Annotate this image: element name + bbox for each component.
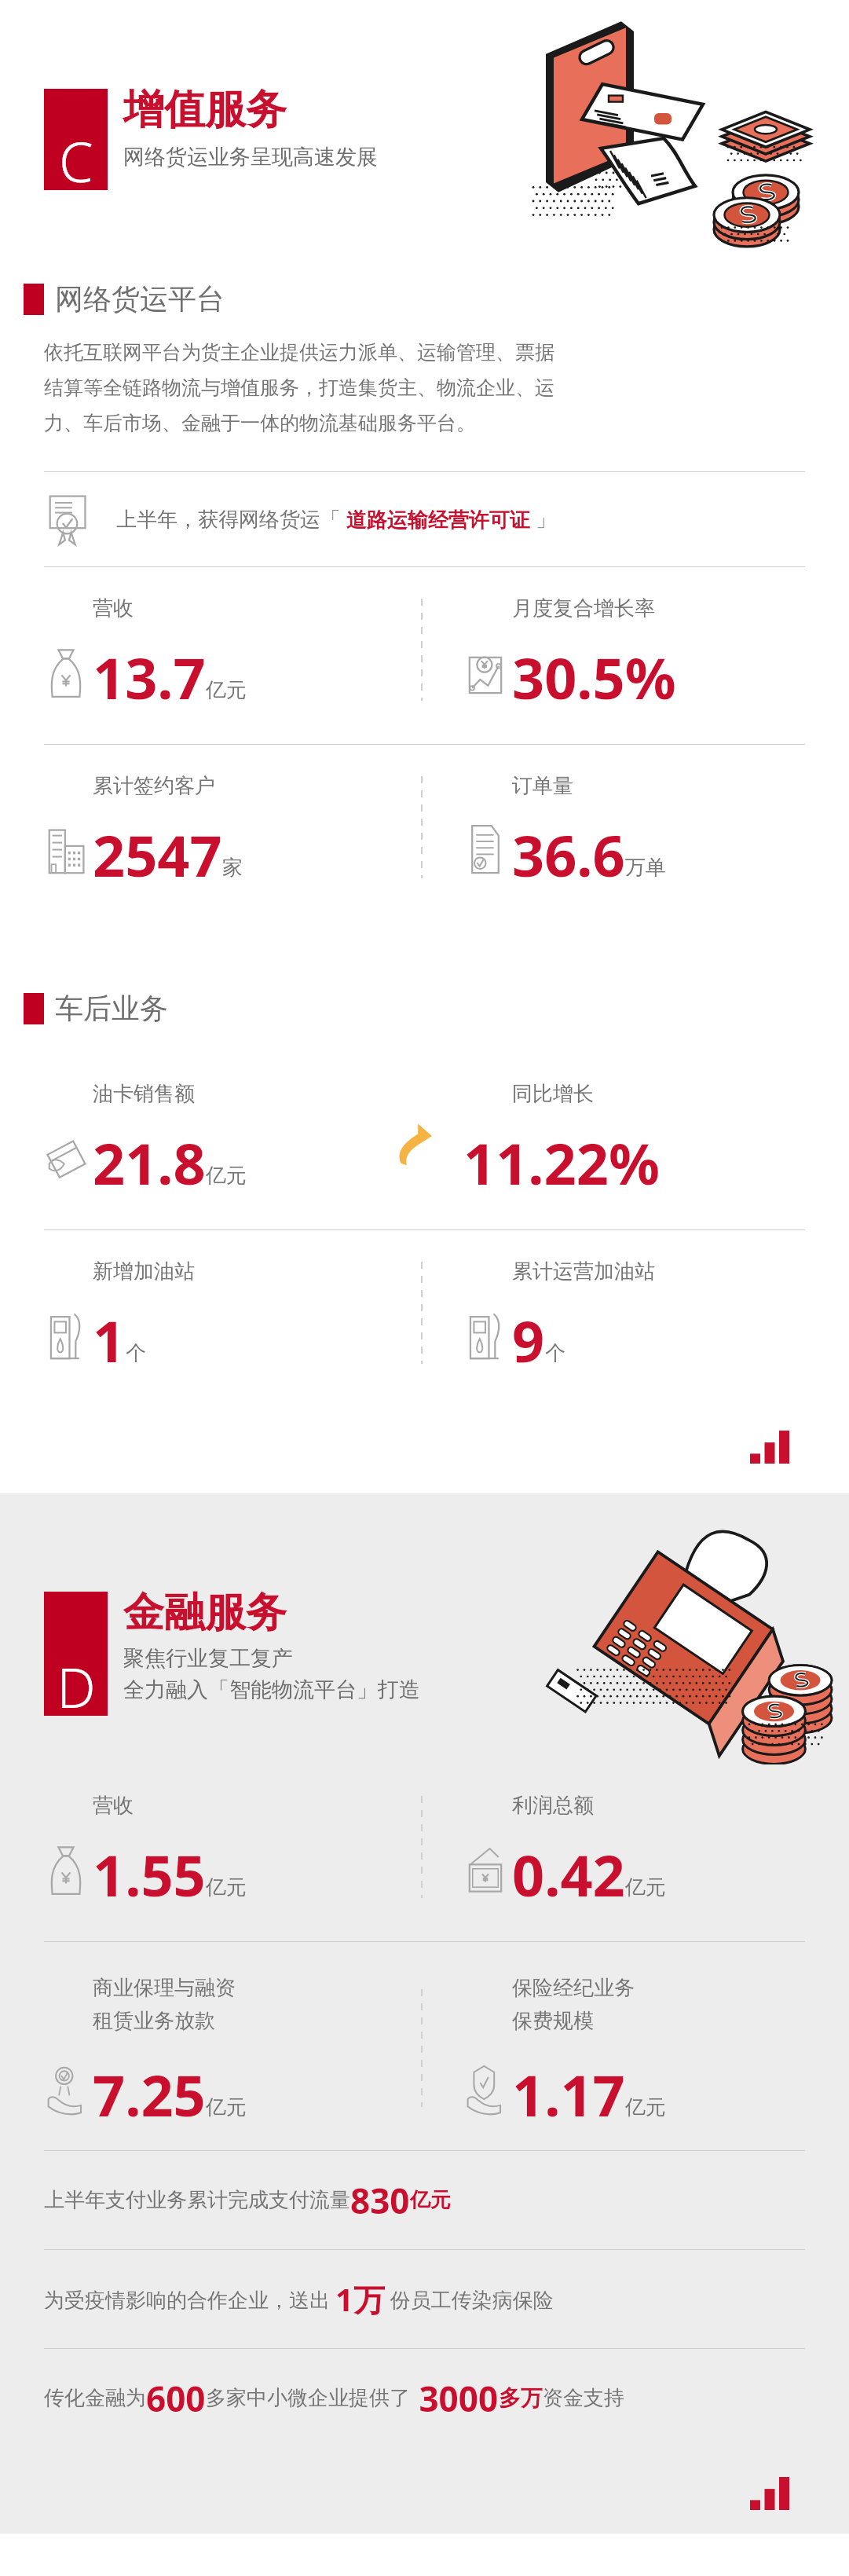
staticText: 11.22% [463,1124,660,1201]
staticText: 道路运输经营许可证 [341,505,536,533]
staticText: 亿元 [206,1874,247,1900]
staticText: 600 [146,2375,206,2422]
staticText: 利润总额 [512,1793,594,1819]
staticText: 1万 [335,2277,385,2321]
staticText: 7.25 [93,2056,206,2133]
button[interactable]: 保险经纪业务 保费规模 [463,1975,833,2122]
staticText: 多家中小微企业提供了 [206,2385,410,2411]
staticText: 累计签约客户 [93,773,215,799]
staticText: 个 [545,1340,565,1366]
other: 订单量 [463,813,512,879]
staticText: 增值服务 [123,84,287,136]
staticText: 网络货运平台 [55,281,225,317]
staticText: 万单 [625,855,666,881]
staticText: 1 [93,1302,126,1379]
button[interactable]: 月度复合增长率 [463,595,833,705]
staticText: C [59,123,93,198]
other: 月度复合增长率 [463,636,512,702]
staticText: 同比增长 [512,1081,594,1107]
button[interactable]: 利润总额 [463,1793,833,1902]
staticText: 个 [126,1340,146,1366]
staticText: 为受疫情影响的合作企业，送出 [44,2285,335,2314]
staticText: 月度复合增长率 [512,595,655,621]
staticText: 1.55 [93,1836,206,1913]
button[interactable]: 累计运营加油站 [463,1259,833,1368]
button[interactable]: 商业保理与融资 租赁业务放款 [44,1975,413,2122]
button[interactable]: 累计签约客户 [44,773,413,882]
staticText: 2547 [93,816,222,893]
staticText: 36.6 [512,816,625,893]
staticText: D [57,1649,96,1724]
staticText: 新增加油站 [93,1259,195,1284]
button[interactable]: 营收 [44,595,413,705]
other: 保险经纪业务 保费规模 [463,2053,512,2119]
other: 累计运营加油站 [463,1299,512,1365]
staticText: 商业保理与融资 租赁业务放款 [93,1975,236,2034]
staticText: 上半年，获得网络货运「 [116,507,341,533]
button[interactable]: 传化金融为 [44,2349,849,2447]
other: 累计签约客户 [44,813,93,879]
staticText: 营收 [93,1793,134,1819]
button[interactable]: 订单量 [463,773,833,882]
other: 营收 [44,636,93,702]
staticText: 聚焦行业复工复产 [123,1645,293,1672]
other: 新增加油站 [44,1299,93,1365]
button[interactable]: 新增加油站 [44,1259,413,1368]
button[interactable]: 油卡销售额 [44,1081,413,1190]
button[interactable]: 车后业务 [24,991,849,1026]
other: 商业保理与融资 租赁业务放款 [44,2053,93,2119]
staticText: 1.17 [512,2056,625,2133]
staticText: 3000 [410,2375,499,2422]
staticText: 亿元 [206,677,247,703]
other: 营收 [44,1833,93,1899]
staticText: 金融服务 [123,1587,287,1639]
staticText: 21.8 [93,1124,206,1201]
staticText: 营收 [93,595,134,621]
staticText: 13.7 [93,639,206,716]
button[interactable]: D [44,1592,108,1716]
staticText: 亿元 [625,1874,666,1900]
staticText: 依托互联网平台为货主企业提供运力派单、运输管理、票据 结算等全链路物流与增值服务… [44,340,554,435]
other: 利润总额 [463,1833,512,1899]
button[interactable]: 网络货运平台 [24,281,849,317]
button[interactable]: 为受疫情影响的合作企业，送出 [44,2250,849,2348]
staticText: 订单量 [512,773,573,799]
other: 油卡销售额 [44,1121,93,1187]
staticText: 亿元 [206,1163,247,1189]
staticText: 多万 [499,2384,543,2412]
staticText: 家 [222,855,243,881]
staticText: 全力融入「智能物流平台」打造 [123,1676,420,1703]
staticText: 上半年支付业务累计完成支付流量 [44,2187,350,2213]
staticText: 份员工传染病保险 [385,2285,554,2314]
button[interactable]: C [44,89,108,190]
staticText: 资金支持 [543,2385,624,2411]
staticText: 830 [350,2177,410,2224]
staticText: 9 [512,1302,545,1379]
staticText: 保险经纪业务 保费规模 [512,1975,635,2034]
staticText: 」 [536,507,556,533]
staticText: 亿元 [410,2187,451,2213]
staticText: 传化金融为 [44,2385,146,2411]
staticText: 油卡销售额 [93,1081,195,1107]
staticText: 亿元 [206,2094,247,2120]
button[interactable]: 同比增长 [463,1081,833,1190]
staticText: 车后业务 [55,991,168,1026]
staticText: 30.5% [512,639,676,716]
button[interactable]: 营收 [44,1793,413,1902]
staticText: 0.42 [512,1836,625,1913]
button[interactable]: 上半年支付业务累计完成支付流量 [44,2151,849,2249]
staticText: 亿元 [625,2094,666,2120]
staticText: 网络货运业务呈现高速发展 [123,144,378,170]
staticText: 累计运营加油站 [512,1259,655,1284]
